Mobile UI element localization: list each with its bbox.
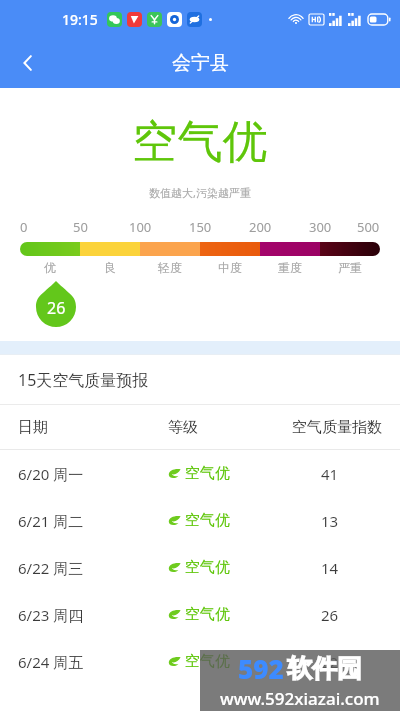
- other: Signal: [329, 13, 344, 26]
- staticText: www.592xiazai.com: [220, 687, 380, 710]
- staticText: 空气优: [0, 114, 400, 171]
- other: Signal: [348, 13, 363, 26]
- button[interactable]: 6/22 周三: [0, 544, 400, 591]
- staticText: 空气优: [185, 558, 230, 577]
- staticText: 0: [20, 218, 28, 236]
- staticText: 6/24 周五: [18, 652, 168, 672]
- staticText: 等级: [168, 418, 198, 437]
- button[interactable]: 6/24 周五: [0, 638, 400, 685]
- staticText: 200: [249, 218, 272, 236]
- staticText: 会宁县: [172, 51, 229, 75]
- staticText: 空气优: [185, 464, 230, 483]
- staticText: 26: [47, 297, 66, 319]
- button[interactable]: 6/23 周四: [0, 591, 400, 638]
- staticText: 中度: [218, 260, 242, 275]
- staticText: 6/20 周一: [18, 464, 168, 484]
- staticText: 优: [44, 260, 56, 275]
- staticText: 良: [104, 260, 116, 275]
- button[interactable]: 6/20 周一: [0, 450, 400, 497]
- staticText: 19:15: [62, 10, 98, 29]
- staticText: 150: [189, 218, 212, 236]
- staticText: 数值越大,污染越严重: [0, 185, 400, 200]
- other: Battery: [368, 14, 390, 25]
- staticText: 空气优: [185, 605, 230, 624]
- staticText: 严重: [338, 260, 362, 275]
- staticText: 日期: [18, 418, 168, 437]
- staticText: 14: [321, 558, 339, 578]
- button[interactable]: Back: [6, 41, 50, 85]
- staticText: 22: [321, 652, 339, 672]
- staticText: 15天空气质量预报: [18, 369, 149, 391]
- other: Wi-Fi: [288, 13, 304, 25]
- staticText: 6/23 周四: [18, 605, 168, 625]
- button[interactable]: 6/21 周二: [0, 497, 400, 544]
- staticText: 空气优: [185, 511, 230, 530]
- staticText: 轻度: [158, 260, 182, 275]
- staticText: 100: [129, 218, 152, 236]
- staticText: 6/22 周三: [18, 558, 168, 578]
- staticText: 26: [321, 605, 339, 625]
- staticText: 空气优: [185, 652, 230, 671]
- staticText: 300: [309, 218, 332, 236]
- other: HD: [309, 14, 324, 25]
- staticText: 41: [321, 464, 339, 484]
- staticText: 50: [73, 218, 88, 236]
- staticText: 6/21 周二: [18, 511, 168, 531]
- staticText: 13: [321, 511, 339, 531]
- staticText: 软件园: [287, 653, 362, 684]
- staticText: 重度: [278, 260, 302, 275]
- button[interactable]: 日期: [0, 405, 400, 449]
- staticText: 空气质量指数: [292, 418, 382, 437]
- staticText: 500: [357, 218, 380, 236]
- staticText: 592: [238, 651, 284, 686]
